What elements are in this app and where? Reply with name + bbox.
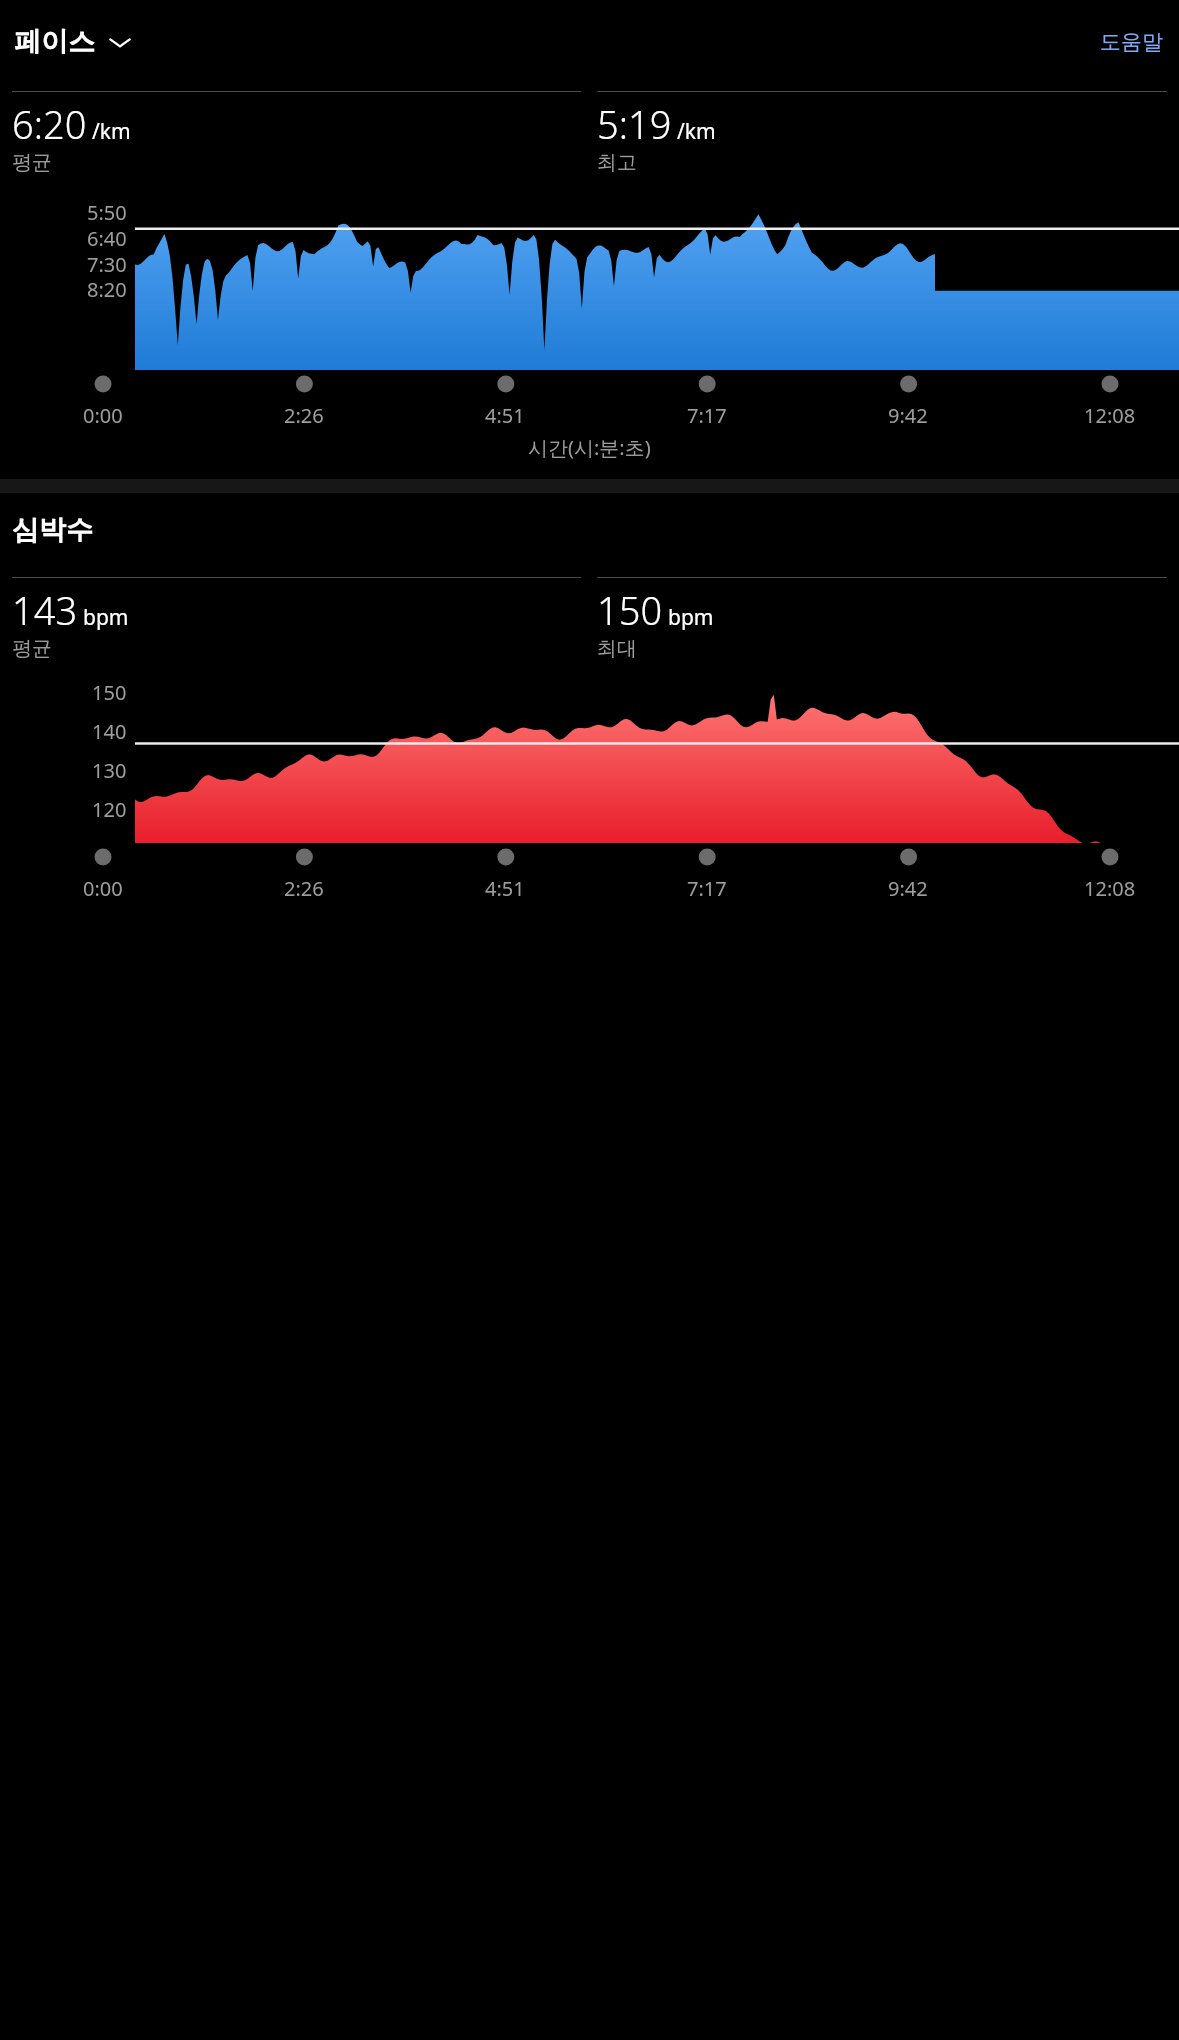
staticText: 최대 bbox=[597, 636, 637, 661]
staticText: 130 bbox=[92, 757, 127, 784]
staticText: bpm bbox=[83, 603, 129, 632]
staticText: 페이스 bbox=[14, 25, 95, 59]
staticText: bpm bbox=[668, 603, 714, 632]
button[interactable]: 도움말 bbox=[1096, 23, 1167, 61]
staticText: /km bbox=[92, 117, 131, 146]
staticText: 시간(시:분:초) bbox=[528, 434, 651, 461]
staticText: 8:20 bbox=[87, 276, 127, 303]
staticText: 2:26 bbox=[284, 875, 324, 902]
staticText: 평균 bbox=[12, 150, 52, 175]
staticText: /km bbox=[677, 117, 716, 146]
button[interactable]: 6:20 bbox=[12, 91, 581, 175]
staticText: 0:00 bbox=[83, 402, 123, 429]
staticText: 7:17 bbox=[687, 402, 727, 429]
staticText: 2:26 bbox=[284, 402, 324, 429]
staticText: 150 bbox=[597, 584, 663, 636]
button[interactable]: 150 bbox=[597, 577, 1167, 661]
staticText: 5:19 bbox=[597, 98, 672, 150]
staticText: 0:00 bbox=[83, 875, 123, 902]
staticText: 140 bbox=[92, 718, 127, 745]
staticText: 7:17 bbox=[687, 875, 727, 902]
staticText: 9:42 bbox=[888, 875, 928, 902]
staticText: 심박수 bbox=[12, 513, 93, 547]
other: Change metric bbox=[109, 36, 131, 49]
staticText: 143 bbox=[12, 584, 78, 636]
staticText: 6:40 bbox=[87, 225, 127, 252]
button[interactable]: 페이스 bbox=[12, 21, 133, 63]
staticText: 평균 bbox=[12, 636, 52, 661]
staticText: 4:51 bbox=[485, 402, 525, 429]
staticText: 최고 bbox=[597, 150, 637, 175]
staticText: 5:50 bbox=[87, 199, 127, 226]
staticText: 7:30 bbox=[87, 251, 127, 278]
staticText: 9:42 bbox=[888, 402, 928, 429]
staticText: 도움말 bbox=[1100, 29, 1163, 55]
staticText: 12:08 bbox=[1084, 875, 1136, 902]
staticText: 120 bbox=[92, 796, 127, 823]
staticText: 4:51 bbox=[485, 875, 525, 902]
staticText: 12:08 bbox=[1084, 402, 1136, 429]
staticText: 150 bbox=[92, 679, 127, 706]
button[interactable]: 5:19 bbox=[597, 91, 1167, 175]
staticText: 6:20 bbox=[12, 98, 87, 150]
button[interactable]: 143 bbox=[12, 577, 581, 661]
